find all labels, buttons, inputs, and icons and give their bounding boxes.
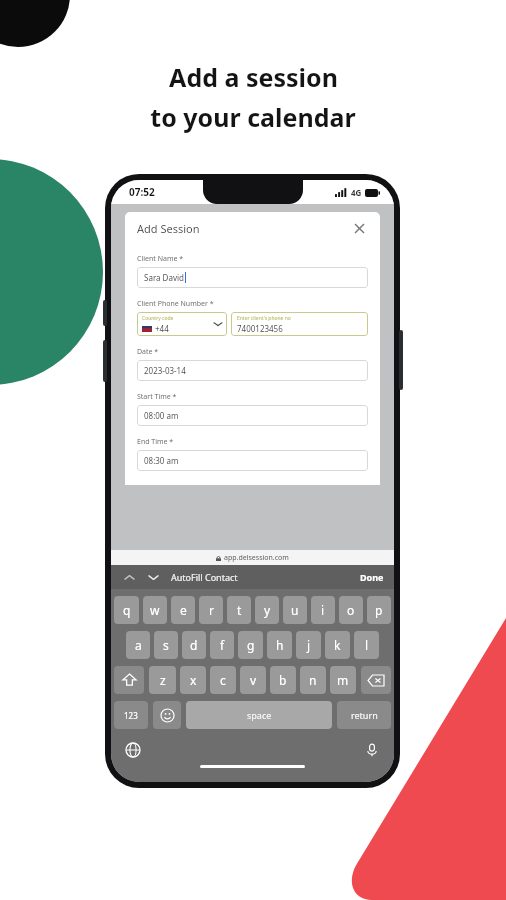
staticText: Client Name * (137, 254, 184, 264)
button[interactable]: 123 (114, 701, 148, 729)
staticText: Add a session (169, 60, 338, 94)
button[interactable]: l (354, 631, 379, 659)
staticText: m (337, 672, 349, 688)
staticText: c (220, 672, 226, 688)
staticText: 4G (351, 187, 362, 198)
button[interactable]: Backspace (361, 666, 391, 694)
button[interactable]: Enter client's phone no (231, 312, 368, 336)
button[interactable]: t (227, 596, 251, 624)
button[interactable]: v (240, 666, 266, 694)
button[interactable]: g (238, 631, 263, 659)
staticText: 07:52 (129, 185, 155, 199)
staticText: l (365, 637, 369, 653)
staticText: 08:00 am (144, 410, 179, 421)
button[interactable]: m (330, 666, 356, 694)
staticText: +44 (155, 323, 169, 334)
staticText: a (135, 637, 142, 653)
staticText: to your calendar (150, 100, 356, 134)
staticText: f (220, 637, 225, 653)
staticText: 7400123456 (237, 323, 283, 334)
staticText: h (276, 637, 284, 653)
button[interactable]: b (270, 666, 296, 694)
button[interactable]: return (337, 701, 391, 729)
button[interactable]: s (154, 631, 178, 659)
button[interactable]: 08:30 am (137, 450, 368, 471)
staticText: app.delsession.com (224, 553, 289, 563)
staticText: Start Time * (137, 392, 177, 402)
staticText: z (160, 672, 166, 688)
button[interactable]: c (210, 666, 236, 694)
button[interactable]: Country code (137, 312, 227, 336)
staticText: w (150, 602, 160, 618)
staticText: v (250, 672, 257, 688)
button[interactable]: y (255, 596, 279, 624)
button[interactable]: 08:00 am (137, 405, 368, 426)
button[interactable]: Emoji (153, 701, 181, 729)
staticText: s (163, 637, 169, 653)
staticText: j (307, 637, 311, 653)
staticText: Sara David (144, 272, 184, 283)
button[interactable]: u (283, 596, 307, 624)
staticText: r (209, 602, 214, 618)
button[interactable]: r (199, 596, 223, 624)
button[interactable]: z (149, 666, 176, 694)
button[interactable]: Previous field (121, 569, 137, 585)
staticText: t (237, 602, 242, 618)
staticText: x (190, 672, 197, 688)
button[interactable]: Close (350, 219, 368, 237)
staticText: q (123, 602, 131, 618)
button[interactable]: f (210, 631, 234, 659)
staticText: AutoFill Contact (171, 571, 238, 583)
button[interactable]: i (311, 596, 335, 624)
staticText: u (291, 602, 299, 618)
button[interactable]: p (367, 596, 391, 624)
staticText: p (375, 602, 383, 618)
staticText: y (264, 602, 271, 618)
staticText: return (351, 709, 378, 721)
button[interactable]: h (267, 631, 292, 659)
staticText: Enter client's phone no (237, 315, 291, 322)
staticText: o (347, 602, 355, 618)
staticText: 08:30 am (144, 455, 179, 466)
button[interactable]: o (339, 596, 363, 624)
staticText: d (190, 637, 198, 653)
button[interactable]: Change keyboard language (122, 739, 144, 761)
button[interactable]: d (182, 631, 206, 659)
staticText: 2023-03-14 (144, 365, 186, 376)
staticText: k (334, 637, 341, 653)
button[interactable]: 2023-03-14 (137, 360, 368, 381)
button[interactable]: Shift (114, 666, 144, 694)
staticText: 123 (124, 710, 138, 721)
staticText: Add Session (137, 221, 200, 236)
staticText: i (321, 602, 325, 618)
button[interactable]: AutoFill Contact (171, 571, 238, 583)
button[interactable]: Done (360, 571, 384, 583)
staticText: Country code (142, 315, 174, 322)
staticText: b (279, 672, 287, 688)
staticText: e (180, 602, 187, 618)
button[interactable]: e (171, 596, 195, 624)
staticText: End Time * (137, 437, 174, 447)
button[interactable]: a (126, 631, 150, 659)
button[interactable]: k (325, 631, 350, 659)
staticText: Date * (137, 347, 159, 357)
button[interactable]: space (186, 701, 332, 729)
button[interactable]: w (143, 596, 167, 624)
button[interactable]: n (300, 666, 326, 694)
staticText: Client Phone Number * (137, 299, 214, 309)
staticText: g (247, 637, 255, 653)
staticText: space (247, 709, 272, 721)
button[interactable]: Sara David (137, 267, 368, 288)
button[interactable]: q (114, 596, 139, 624)
button[interactable]: j (296, 631, 321, 659)
button[interactable]: Voice input (361, 739, 383, 761)
button[interactable]: x (180, 666, 206, 694)
staticText: Done (360, 571, 384, 583)
staticText: n (309, 672, 317, 688)
button[interactable]: Next field (145, 569, 161, 585)
